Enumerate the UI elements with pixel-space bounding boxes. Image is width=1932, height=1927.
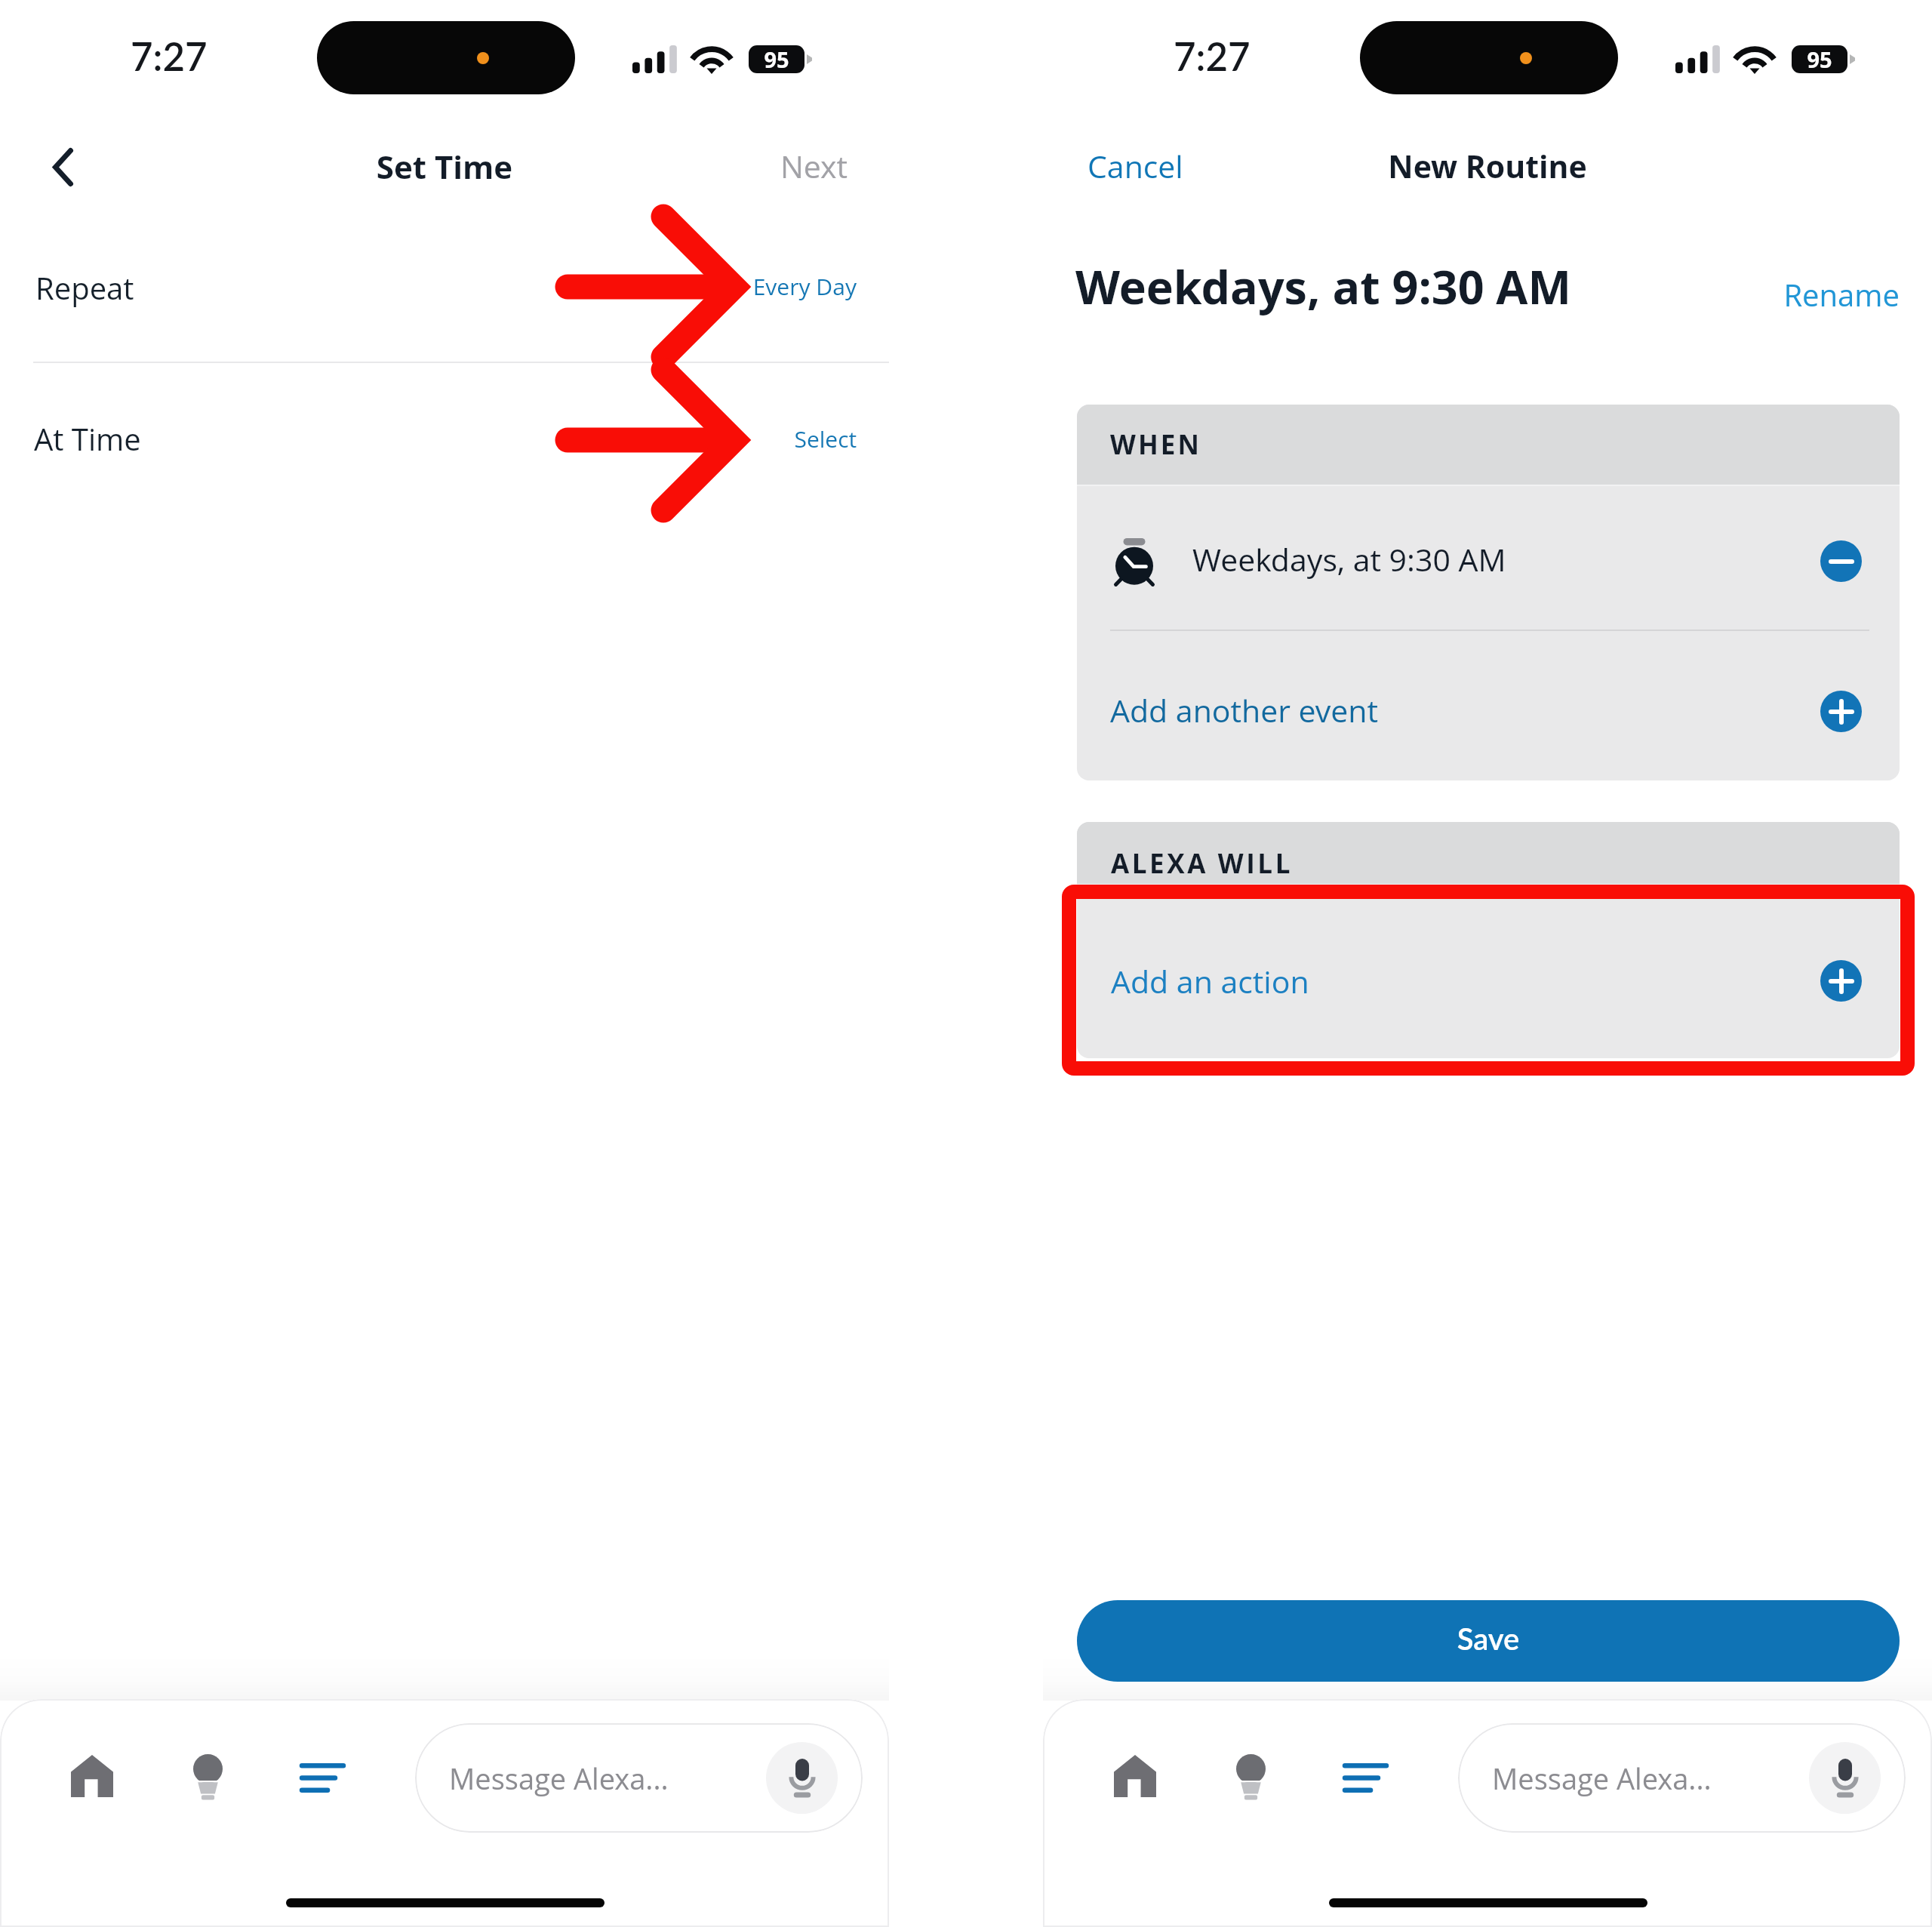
staticText: Repeat — [35, 267, 134, 308]
staticText: Message Alexa... — [1492, 1759, 1712, 1798]
staticText: 95 — [749, 45, 804, 72]
button[interactable]: Add another event — [1077, 631, 1900, 780]
button[interactable]: Add — [1820, 960, 1862, 1002]
staticText: 95 — [1792, 45, 1847, 72]
button[interactable]: More — [285, 1740, 360, 1815]
staticText: At Time — [34, 418, 141, 459]
staticText: WHEN — [1110, 426, 1202, 463]
staticText: Every Day — [0, 271, 857, 302]
other: Voice — [1809, 1742, 1881, 1814]
staticText: 7:27 — [131, 33, 208, 79]
button[interactable]: Next — [747, 134, 848, 202]
staticText: 7:27 — [1174, 33, 1251, 79]
button[interactable]: Home — [54, 1738, 130, 1814]
other: Voice — [766, 1742, 838, 1814]
button[interactable]: Add — [1820, 691, 1862, 732]
staticText: Weekdays, at 9:30 AM — [1192, 538, 1506, 580]
button[interactable]: Rename — [1767, 263, 1900, 323]
staticText: Save — [1077, 1621, 1900, 1657]
staticText: Select — [0, 423, 857, 454]
button[interactable]: Devices — [170, 1740, 245, 1815]
button[interactable]: At Time — [0, 363, 889, 506]
staticText: ALEXA WILL — [1111, 845, 1294, 882]
button[interactable]: Message Alexa... — [415, 1723, 863, 1833]
button[interactable]: Message Alexa... — [1458, 1723, 1906, 1833]
button[interactable]: Back — [26, 131, 99, 203]
staticText: Cancel — [1088, 145, 1183, 187]
staticText: Add another event — [1110, 689, 1378, 731]
staticText: Weekdays, at 9:30 AM — [1075, 255, 1571, 318]
staticText: Set Time — [0, 145, 889, 188]
staticText: Message Alexa... — [449, 1759, 669, 1798]
staticText: Next — [747, 145, 848, 187]
button[interactable]: Devices — [1213, 1740, 1288, 1815]
staticText: Rename — [1767, 274, 1900, 315]
button[interactable]: More — [1327, 1740, 1403, 1815]
button[interactable]: Weekdays, at 9:30 AM — [1077, 485, 1900, 630]
button[interactable]: Cancel — [1073, 134, 1194, 202]
button[interactable]: Remove — [1820, 540, 1862, 582]
staticText: Add an action — [1111, 960, 1309, 1002]
button[interactable]: Repeat — [0, 219, 889, 362]
staticText: New Routine — [1043, 145, 1932, 187]
button[interactable]: Add an action — [1077, 885, 1900, 1058]
button[interactable]: Home — [1097, 1738, 1173, 1814]
button[interactable]: Save — [1077, 1600, 1900, 1682]
